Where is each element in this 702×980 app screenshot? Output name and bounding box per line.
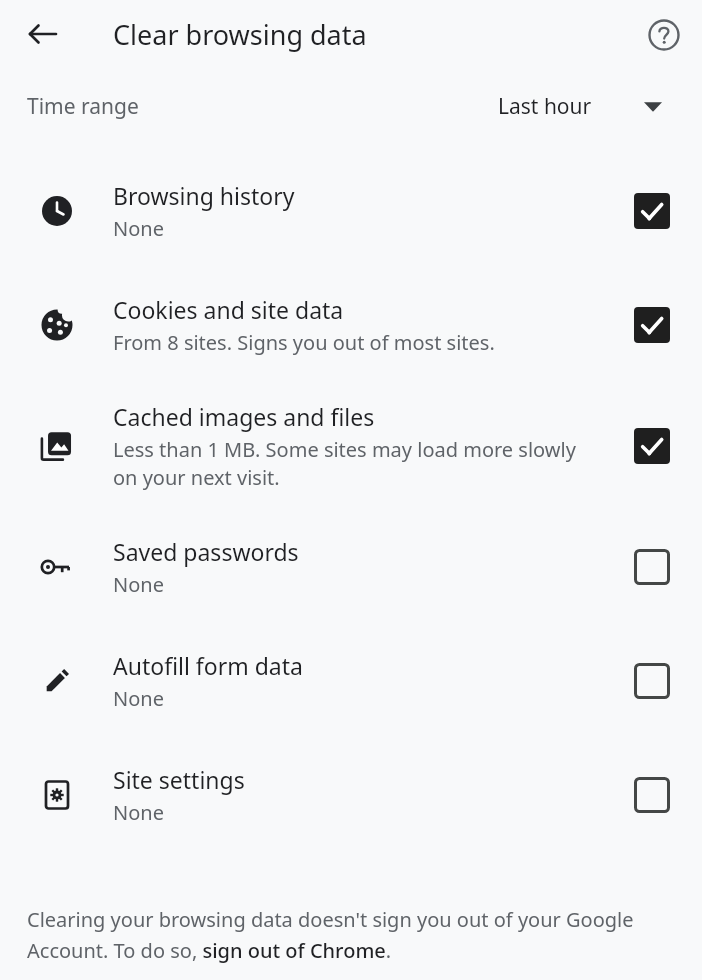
button[interactable]: Cached images and files checked [632,426,672,466]
button[interactable]: Site settings unchecked [632,775,672,815]
button[interactable]: Time range [0,70,702,138]
button[interactable]: Back [19,10,67,58]
staticText: Last hour [498,92,592,121]
button[interactable]: Autofill form data unchecked [632,661,672,701]
button[interactable]: Autofill form data [0,624,702,738]
staticText: None [113,571,164,598]
button[interactable]: Browsing history checked [632,191,672,231]
button[interactable]: Cookies and site data checked [632,305,672,345]
button[interactable]: Saved passwords unchecked [632,547,672,587]
button[interactable]: Saved passwords [0,510,702,624]
staticText: Time range [27,92,139,121]
staticText: From 8 sites. Signs you out of most site… [113,329,495,356]
staticText: Cookies and site data [113,294,344,325]
staticText: None [113,215,164,242]
staticText: Cached images and files [113,401,375,432]
staticText: Site settings [113,764,245,795]
button[interactable]: Help [640,11,688,59]
staticText: None [113,685,164,712]
staticText: Clear browsing data [113,16,367,53]
staticText: Autofill form data [113,650,303,681]
button[interactable]: Cookies and site data [0,268,702,382]
button[interactable]: Cached images and files [0,382,702,510]
button[interactable]: Browsing history [0,154,702,268]
staticText: Clearing your browsing data doesn't sign… [27,906,675,963]
staticText: Browsing history [113,180,295,211]
button[interactable]: Clearing your browsing data doesn't sign… [27,906,675,963]
staticText: None [113,799,164,826]
staticText: Less than 1 MB. Some sites may load more… [113,436,576,491]
button[interactable]: Site settings [0,738,702,852]
staticText: Saved passwords [113,536,299,567]
